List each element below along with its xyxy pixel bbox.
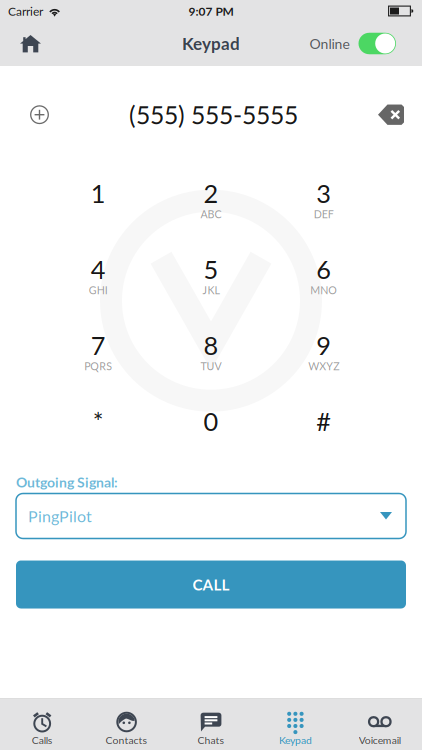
staticText: CALL	[192, 575, 229, 594]
button[interactable]: 9	[267, 317, 380, 393]
button[interactable]: Calls	[0, 699, 84, 750]
button[interactable]: 7	[42, 317, 155, 393]
button[interactable]: Voicemail	[338, 699, 422, 750]
button[interactable]: 6	[267, 241, 380, 317]
button[interactable]: 5	[155, 241, 267, 317]
staticText: PQRS	[84, 360, 112, 373]
button[interactable]: 4	[42, 241, 155, 317]
button[interactable]: Outgoing signal: PingPilot	[16, 493, 406, 538]
button[interactable]: #	[267, 393, 380, 469]
staticText: JKL	[202, 284, 219, 297]
staticText: 9:07 PM	[188, 4, 233, 18]
staticText: PingPilot	[28, 506, 92, 526]
button[interactable]: *	[42, 393, 155, 469]
staticText: DEF	[314, 208, 334, 221]
button[interactable]: CALL	[16, 560, 406, 608]
staticText: MNO	[310, 284, 337, 297]
staticText: WXYZ	[308, 360, 339, 373]
button[interactable]: Contacts	[84, 699, 169, 750]
staticText: (555) 555-5555	[129, 100, 298, 129]
staticText: 2	[203, 178, 218, 208]
staticText: 3	[316, 178, 331, 208]
staticText: #	[316, 406, 331, 436]
staticText: Keypad	[182, 33, 240, 54]
staticText: 7	[91, 330, 106, 360]
staticText: Chats	[197, 734, 224, 746]
button[interactable]: Home	[0, 23, 57, 64]
staticText: 1	[91, 178, 106, 208]
button[interactable]: 8	[155, 317, 267, 393]
button[interactable]: 1	[42, 165, 155, 241]
button[interactable]: Online toggle	[309, 23, 422, 64]
staticText: 5	[203, 254, 218, 284]
staticText: Online	[309, 35, 349, 52]
button[interactable]: Chats	[169, 699, 253, 750]
staticText: Contacts	[106, 734, 148, 746]
staticText: 0	[203, 406, 218, 436]
staticText: 8	[203, 330, 218, 360]
button[interactable]: 0	[155, 393, 267, 469]
staticText: Keypad	[279, 734, 312, 746]
staticText: 9	[316, 330, 331, 360]
staticText: *	[93, 406, 104, 436]
button[interactable]: 2	[155, 165, 267, 241]
staticText: ABC	[200, 208, 221, 221]
button[interactable]: Delete	[360, 88, 422, 142]
staticText: TUV	[200, 360, 221, 373]
staticText: 6	[316, 254, 331, 284]
button[interactable]: Add contact	[0, 89, 67, 140]
staticText: Voicemail	[359, 734, 401, 746]
button[interactable]: 3	[267, 165, 380, 241]
staticText: 4	[91, 254, 106, 284]
staticText: Outgoing Signal:	[16, 474, 118, 490]
staticText: Calls	[32, 734, 53, 746]
button[interactable]: Keypad	[253, 699, 338, 750]
staticText: GHI	[89, 284, 108, 297]
staticText: Carrier	[8, 4, 43, 18]
